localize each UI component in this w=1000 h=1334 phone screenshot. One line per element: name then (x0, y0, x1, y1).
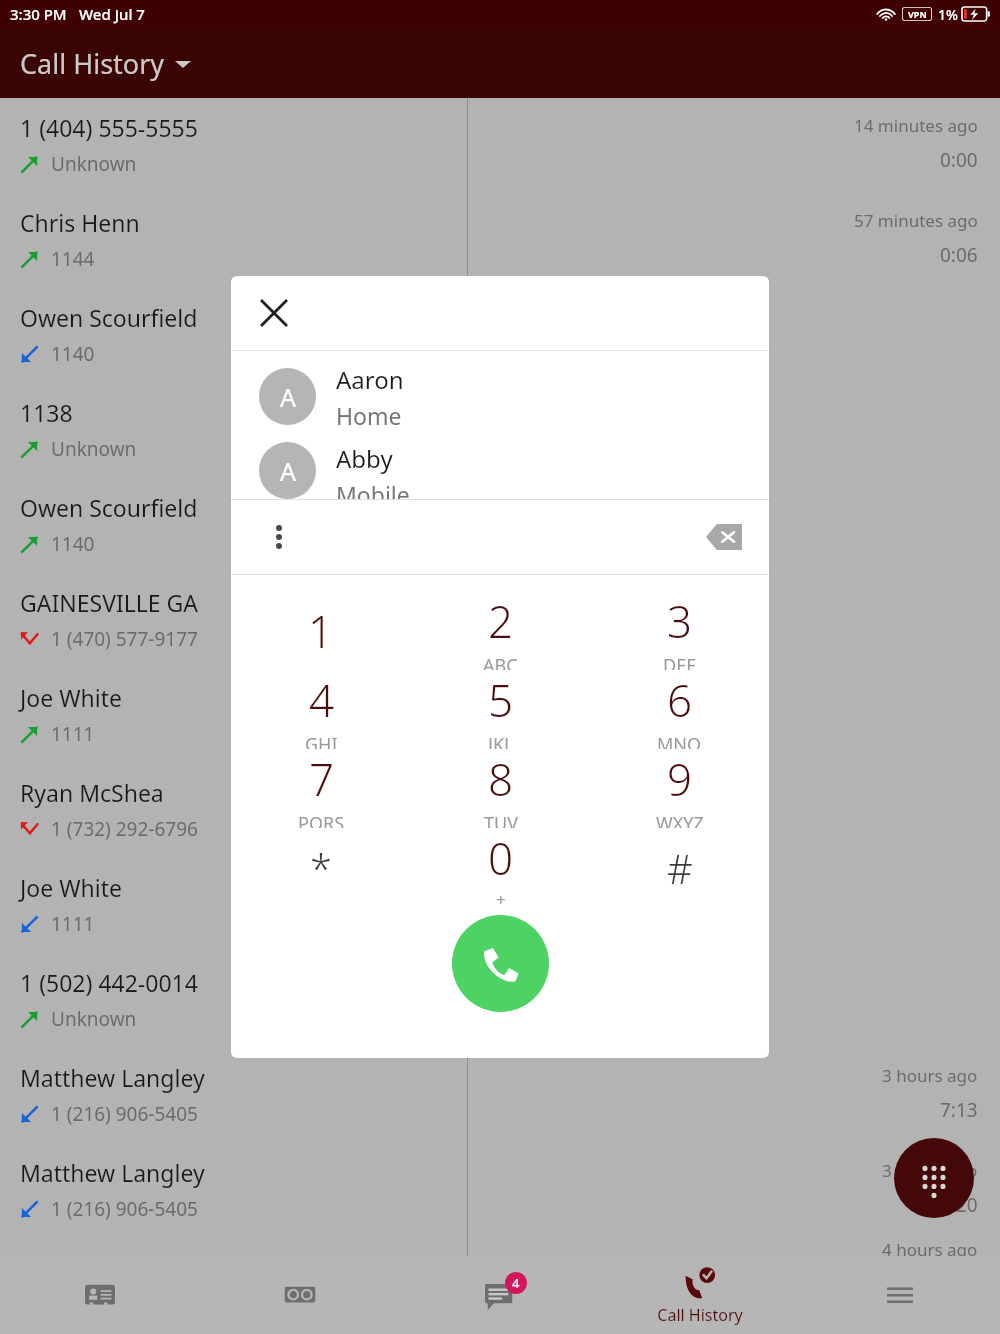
button[interactable]: Call History (600, 1256, 800, 1334)
button[interactable]: Backspace (701, 514, 747, 560)
staticText: 8 (488, 749, 514, 809)
button[interactable]: A (231, 442, 769, 499)
staticText: 1111 (51, 721, 95, 747)
button[interactable]: 5 (411, 670, 590, 749)
staticText: Unknown (51, 436, 137, 462)
staticText: 4 (309, 670, 335, 730)
button[interactable]: 1 (502) 442-0014 (0, 953, 1000, 1048)
staticText: 4 hours ago (882, 1238, 978, 1256)
button[interactable]: Contacts (0, 1256, 200, 1334)
staticText: 3:30 PM (10, 4, 67, 24)
staticText: Unknown (51, 1006, 137, 1032)
staticText: 1138 (20, 397, 73, 428)
button[interactable]: 7 (231, 749, 411, 828)
button[interactable]: Call History (20, 45, 191, 82)
button[interactable]: # (590, 828, 769, 907)
button[interactable]: More (800, 1256, 1000, 1334)
staticText: Mobile (336, 479, 410, 499)
staticText: 1 (308, 601, 334, 661)
button[interactable]: Joe White (0, 858, 1000, 953)
staticText: Joe White (20, 682, 122, 713)
button[interactable]: 1 (231, 591, 411, 670)
staticText: Matthew Langley (20, 1062, 205, 1093)
button[interactable]: 2 (411, 591, 590, 670)
button[interactable]: Ryan McShea (0, 763, 1000, 858)
staticText: Matthew Langley (20, 1157, 205, 1188)
button[interactable]: * (231, 828, 411, 907)
staticText: 4 (512, 1274, 520, 1292)
button[interactable]: Owen Scourfield (0, 478, 1000, 573)
button[interactable]: Call (452, 915, 549, 1012)
staticText: 9 (667, 749, 693, 809)
staticText: Home (336, 400, 402, 431)
button[interactable]: 1138 (0, 383, 1000, 478)
staticText: 3 (667, 591, 693, 651)
staticText: A (280, 454, 296, 488)
staticText: 14 minutes ago (854, 114, 978, 137)
staticText: 7 (309, 749, 335, 809)
staticText: Abby (336, 442, 393, 475)
staticText: VPN (908, 8, 927, 20)
staticText: 1 (470) 577-9177 (51, 626, 198, 652)
button[interactable]: Close (253, 292, 295, 334)
staticText: JKL (488, 732, 514, 749)
staticText: GAINESVILLE GA (20, 587, 199, 618)
staticText: Unknown (51, 151, 137, 177)
staticText: DEF (663, 653, 696, 670)
staticText: 1 (216) 906-5405 (51, 1196, 198, 1222)
staticText: 1144 (51, 246, 95, 272)
staticText: 1 (502) 442-0014 (20, 967, 198, 998)
button[interactable]: More options (259, 517, 299, 557)
staticText: 1111 (51, 911, 95, 937)
button[interactable]: GAINESVILLE GA (0, 573, 1000, 668)
button[interactable]: 6 (590, 670, 769, 749)
staticText: Owen Scourfield (20, 492, 198, 523)
button[interactable]: 1 (404) 555-5555 (0, 98, 1000, 193)
button[interactable]: Owen Scourfield (0, 288, 1000, 383)
staticText: Joe White (20, 872, 122, 903)
staticText: WXYZ (656, 811, 704, 828)
staticText: 1% (938, 5, 958, 24)
staticText: 3 hours ago (882, 1159, 978, 1182)
button[interactable]: 3 (590, 591, 769, 670)
staticText: 2 (488, 591, 514, 651)
button[interactable]: 9 (590, 749, 769, 828)
button[interactable]: 4 (231, 670, 411, 749)
staticText: # (667, 841, 693, 895)
staticText: Wed Jul 7 (79, 4, 145, 24)
staticText: 5 (488, 670, 514, 730)
staticText: PQRS (298, 811, 345, 828)
button[interactable]: Matthew Langley (0, 1143, 1000, 1238)
button[interactable]: Joe White (0, 668, 1000, 763)
button[interactable]: A (231, 351, 769, 442)
button[interactable]: Messages (400, 1256, 600, 1334)
staticText: 1 (216) 906-5405 (51, 1101, 198, 1127)
staticText: 0 (488, 828, 514, 888)
staticText: 6 (667, 670, 693, 730)
staticText: 1 (404) 555-5555 (20, 112, 198, 143)
button[interactable]: Voicemail (200, 1256, 400, 1334)
staticText: A (280, 380, 296, 414)
button[interactable]: 8 (411, 749, 590, 828)
button[interactable]: 0 (411, 828, 590, 907)
staticText: GHI (305, 732, 338, 749)
staticText: Owen Scourfield (20, 302, 198, 333)
staticText: Chris Henn (20, 207, 140, 238)
staticText: Call History (20, 45, 165, 82)
staticText: + (496, 888, 506, 907)
staticText: 0:00 (940, 147, 978, 173)
staticText: Ryan McShea (20, 777, 164, 808)
staticText: Call History (657, 1304, 743, 1326)
staticText: 1 (732) 292-6796 (51, 816, 198, 842)
staticText: 1140 (51, 341, 95, 367)
staticText: 1:20 (940, 1192, 978, 1218)
staticText: 1140 (51, 531, 95, 557)
button[interactable]: Open dialpad (894, 1138, 974, 1218)
button[interactable]: Matthew Langley (0, 1048, 1000, 1143)
button[interactable]: Chris Henn (0, 193, 1000, 288)
staticText: TUV (484, 811, 518, 828)
staticText: 7:13 (940, 1097, 978, 1123)
staticText: 3 hours ago (882, 1064, 978, 1087)
staticText: * (310, 841, 333, 895)
staticText: 0:06 (940, 242, 978, 268)
